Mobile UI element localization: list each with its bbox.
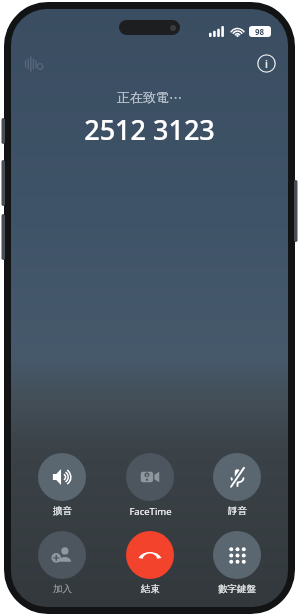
button[interactable]: FaceTime: [115, 453, 185, 518]
staticText: 加入: [53, 583, 72, 595]
button[interactable]: Keypad: [202, 531, 272, 595]
button[interactable]: End call: [115, 531, 185, 595]
staticText: 數字鍵盤: [218, 583, 256, 595]
staticText: 靜音: [228, 505, 247, 517]
staticText: i: [265, 56, 268, 71]
button[interactable]: Add call: [27, 531, 97, 595]
button[interactable]: Mute: [202, 453, 272, 517]
staticText: 2512 3123: [84, 111, 215, 148]
button[interactable]: Call info: [254, 51, 278, 75]
staticText: 正在致電⋯: [117, 89, 182, 105]
staticText: FaceTime: [129, 505, 172, 518]
button[interactable]: Speaker: [27, 453, 97, 517]
staticText: 結束: [141, 583, 160, 595]
staticText: 擴音: [53, 505, 72, 517]
button[interactable]: Audio source: [21, 51, 47, 77]
staticText: 98: [255, 26, 265, 37]
